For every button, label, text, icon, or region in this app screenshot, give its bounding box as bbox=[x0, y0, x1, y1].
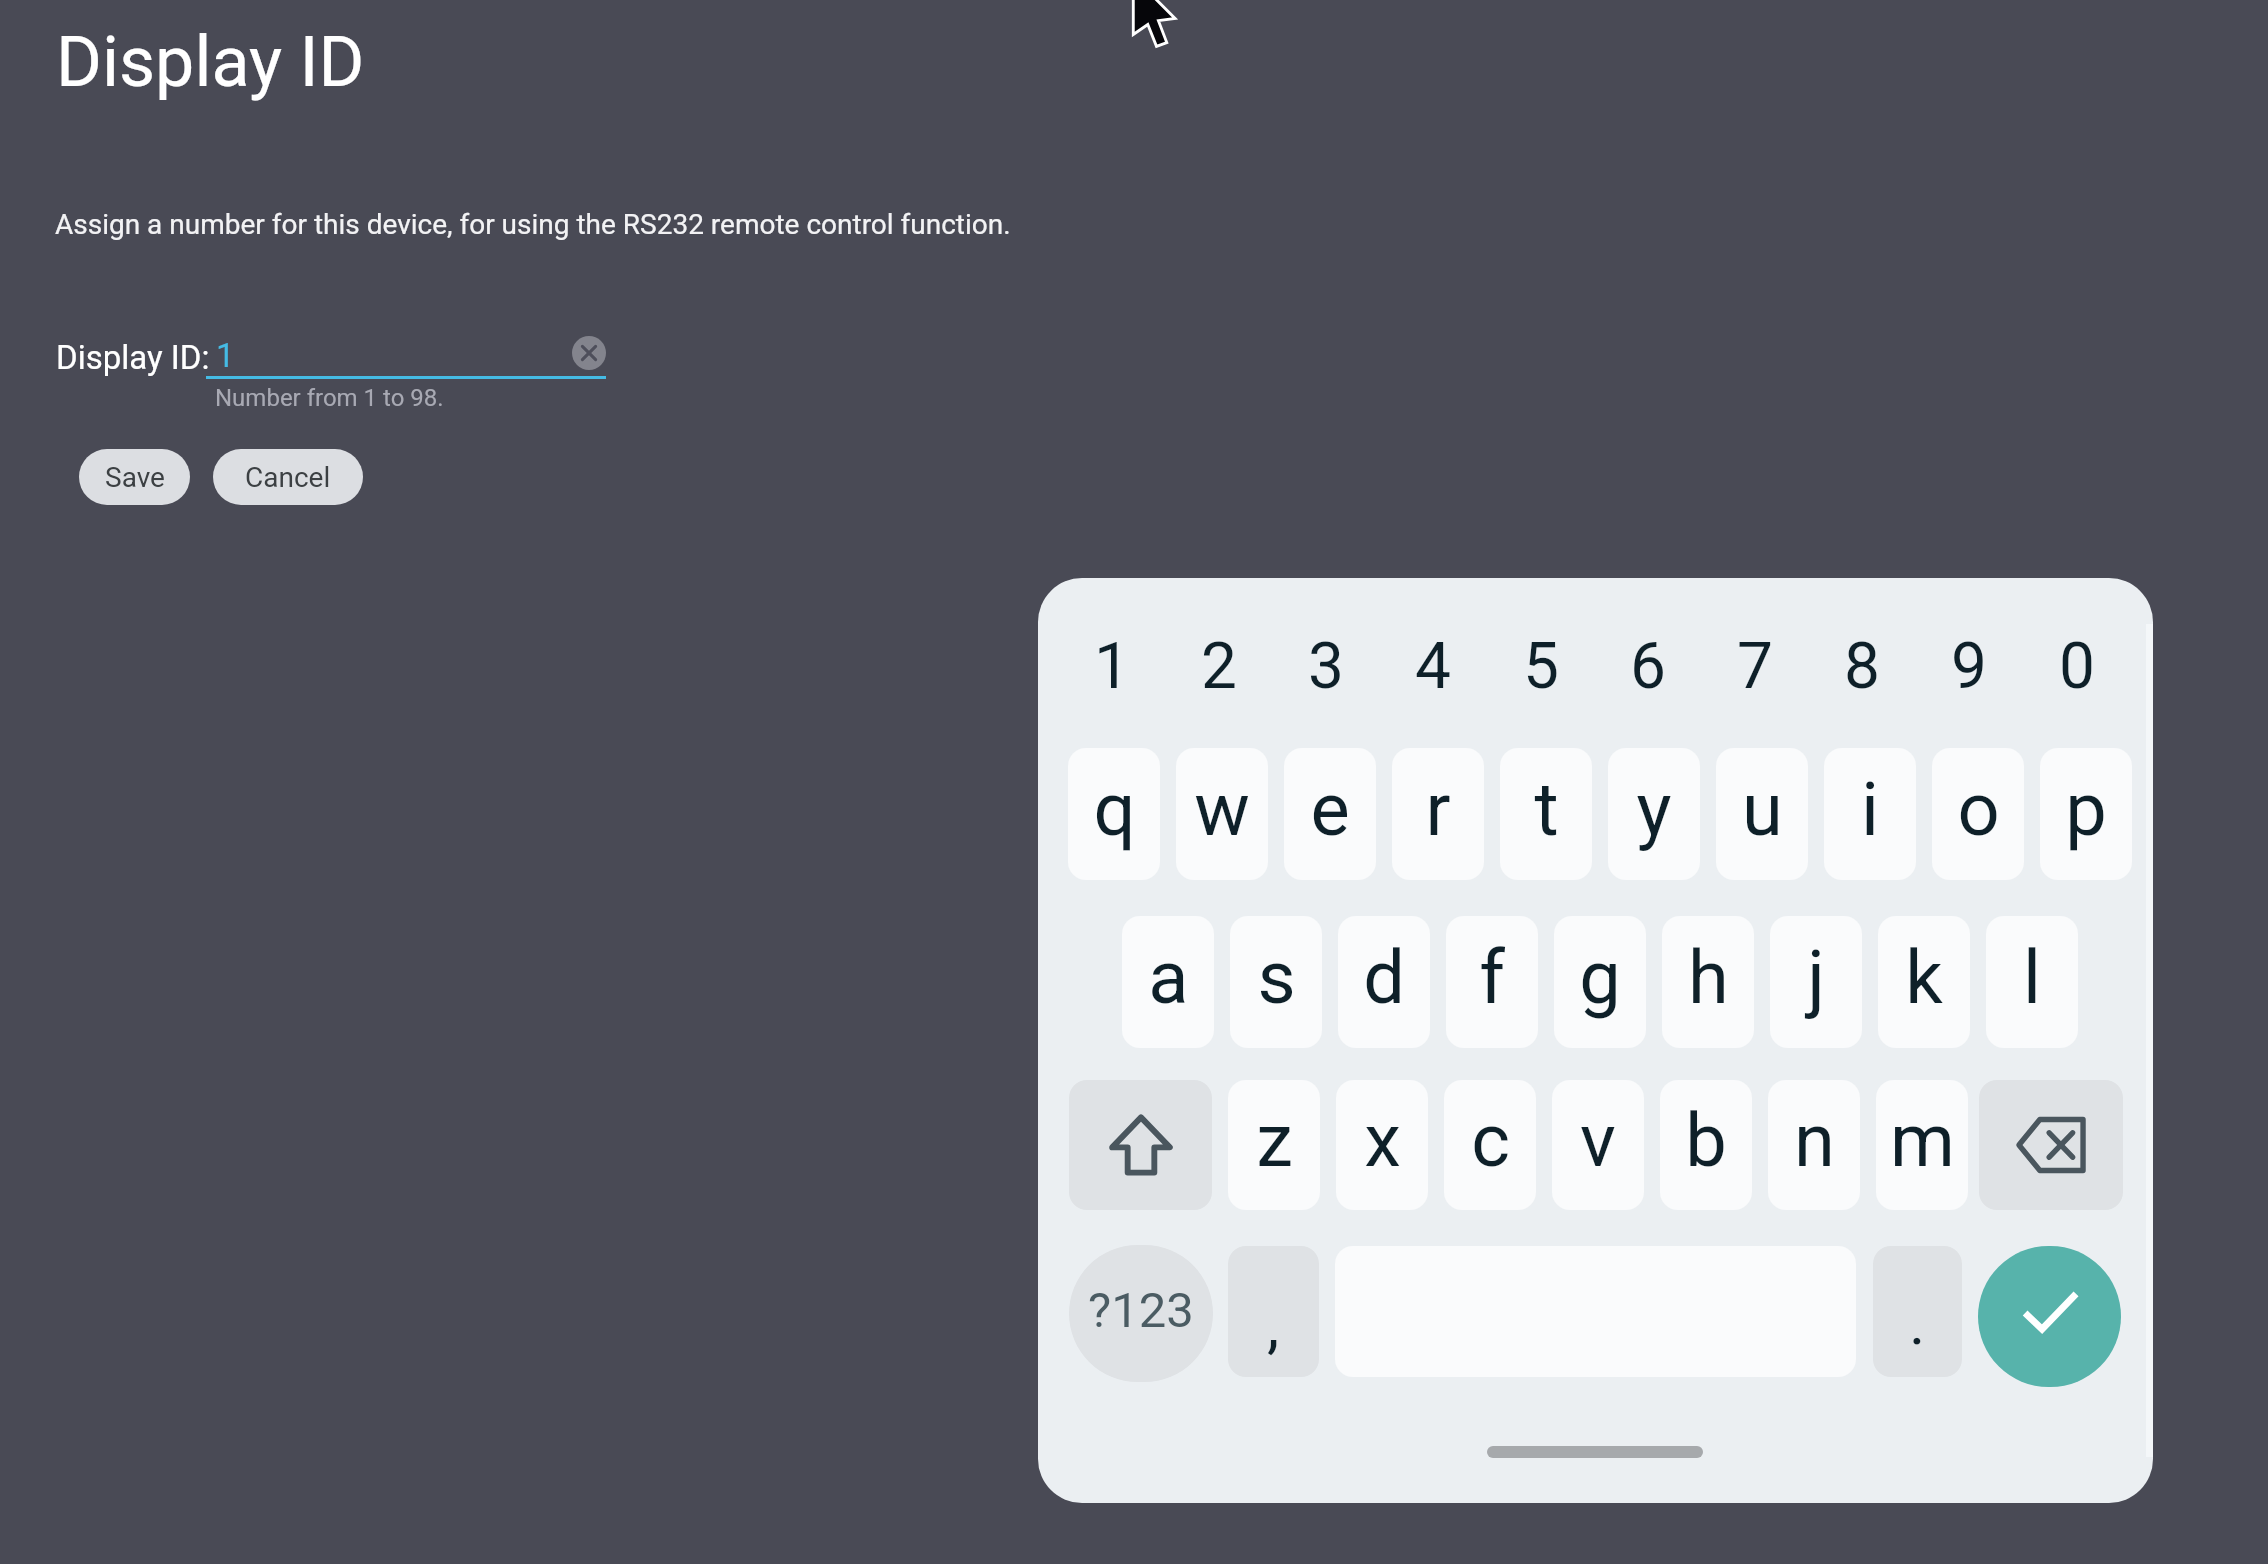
button[interactable]: o bbox=[1932, 748, 2024, 880]
staticText: ?123 bbox=[1088, 1282, 1194, 1339]
staticText: b bbox=[1685, 1097, 1727, 1184]
button[interactable]: p bbox=[2040, 748, 2132, 880]
staticText: l bbox=[2023, 934, 2041, 1021]
button[interactable]: Save bbox=[79, 449, 190, 505]
button[interactable]: y bbox=[1608, 748, 1700, 880]
button[interactable]: s bbox=[1230, 916, 1322, 1048]
staticText: h bbox=[1688, 934, 1729, 1021]
button[interactable]: c bbox=[1444, 1080, 1536, 1210]
staticText: z bbox=[1256, 1097, 1293, 1184]
button[interactable]: r bbox=[1392, 748, 1484, 880]
staticText: Save bbox=[105, 461, 165, 494]
button[interactable]: n bbox=[1768, 1080, 1860, 1210]
staticText: Number from 1 to 98. bbox=[215, 384, 444, 412]
staticText: f bbox=[1479, 934, 1505, 1021]
staticText: y bbox=[1636, 766, 1672, 853]
staticText: r bbox=[1425, 766, 1451, 853]
button[interactable]: z bbox=[1228, 1080, 1320, 1210]
button[interactable]: Clear text bbox=[572, 336, 606, 370]
button[interactable]: m bbox=[1876, 1080, 1968, 1210]
button[interactable]: . bbox=[1873, 1246, 1962, 1377]
button[interactable]: 7 bbox=[1709, 604, 1801, 728]
button[interactable]: 3 bbox=[1280, 604, 1372, 728]
staticText: 1 bbox=[216, 336, 235, 375]
staticText: 7 bbox=[1737, 629, 1773, 704]
staticText: u bbox=[1742, 766, 1783, 853]
button[interactable]: Backspace bbox=[1979, 1080, 2123, 1210]
staticText: . bbox=[1909, 1286, 1926, 1359]
button[interactable]: k bbox=[1878, 916, 1970, 1048]
button[interactable]: x bbox=[1336, 1080, 1428, 1210]
staticText: c bbox=[1471, 1097, 1510, 1184]
staticText: g bbox=[1579, 934, 1621, 1021]
staticText: 5 bbox=[1523, 629, 1559, 704]
button[interactable]: 8 bbox=[1816, 604, 1908, 728]
button[interactable]: 4 bbox=[1387, 604, 1479, 728]
staticText: t bbox=[1534, 766, 1559, 853]
button[interactable]: q bbox=[1068, 748, 1160, 880]
button[interactable]: d bbox=[1338, 916, 1430, 1048]
button[interactable]: 5 bbox=[1495, 604, 1587, 728]
button[interactable]: ?123 bbox=[1069, 1245, 1213, 1382]
button[interactable]: v bbox=[1552, 1080, 1644, 1210]
button[interactable]: a bbox=[1122, 916, 1214, 1048]
button[interactable]: t bbox=[1500, 748, 1592, 880]
staticText: v bbox=[1580, 1097, 1616, 1184]
staticText: 6 bbox=[1630, 629, 1666, 704]
staticText: 1 bbox=[1094, 629, 1130, 704]
button[interactable]: 6 bbox=[1602, 604, 1694, 728]
staticText: s bbox=[1257, 934, 1296, 1021]
staticText: 0 bbox=[2059, 629, 2095, 704]
staticText: i bbox=[1861, 766, 1879, 853]
button[interactable]: b bbox=[1660, 1080, 1752, 1210]
button[interactable]: Cancel bbox=[213, 449, 363, 505]
staticText: j bbox=[1807, 934, 1825, 1021]
staticText: p bbox=[2065, 766, 2107, 853]
button[interactable]: e bbox=[1284, 748, 1376, 880]
staticText: Assign a number for this device, for usi… bbox=[55, 208, 1011, 241]
button[interactable]: j bbox=[1770, 916, 1862, 1048]
staticText: , bbox=[1267, 1289, 1280, 1362]
staticText: a bbox=[1148, 934, 1189, 1021]
staticText: 2 bbox=[1201, 629, 1237, 704]
button[interactable]: Shift bbox=[1069, 1080, 1212, 1210]
button[interactable]: 9 bbox=[1923, 604, 2015, 728]
staticText: Cancel bbox=[245, 461, 331, 494]
staticText: e bbox=[1310, 766, 1350, 853]
button[interactable]: 1 bbox=[1066, 604, 1158, 728]
staticText: x bbox=[1364, 1097, 1401, 1184]
button[interactable]: f bbox=[1446, 916, 1538, 1048]
staticText: 9 bbox=[1951, 629, 1987, 704]
button[interactable]: g bbox=[1554, 916, 1646, 1048]
staticText: Display ID bbox=[56, 21, 365, 103]
button[interactable]: 2 bbox=[1173, 604, 1265, 728]
staticText: m bbox=[1890, 1097, 1955, 1184]
button[interactable]: 0 bbox=[2031, 604, 2123, 728]
button[interactable]: i bbox=[1824, 748, 1916, 880]
staticText: k bbox=[1905, 934, 1943, 1021]
button[interactable]: h bbox=[1662, 916, 1754, 1048]
staticText: w bbox=[1194, 766, 1250, 853]
button[interactable]: Enter bbox=[1978, 1246, 2121, 1387]
button[interactable]: , bbox=[1228, 1246, 1319, 1377]
staticText: q bbox=[1093, 766, 1136, 853]
staticText: 3 bbox=[1308, 629, 1344, 704]
staticText: d bbox=[1363, 934, 1405, 1021]
staticText: n bbox=[1794, 1097, 1835, 1184]
staticText: o bbox=[1957, 766, 2000, 853]
staticText: Display ID: bbox=[56, 338, 210, 377]
staticText: 4 bbox=[1415, 629, 1451, 704]
staticText: 8 bbox=[1844, 629, 1880, 704]
button[interactable]: u bbox=[1716, 748, 1808, 880]
button[interactable]: l bbox=[1986, 916, 2078, 1048]
button[interactable]: w bbox=[1176, 748, 1268, 880]
